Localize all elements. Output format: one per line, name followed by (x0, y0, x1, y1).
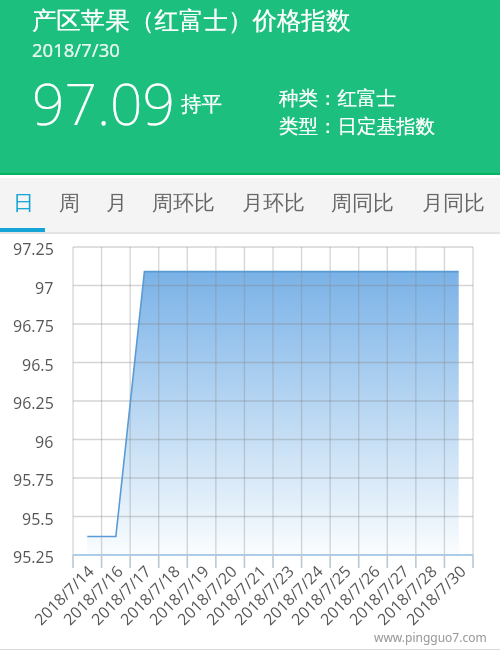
staticText: 97.25 (13, 238, 54, 260)
staticText: 产区苹果（红富士）价格指数 (32, 5, 351, 36)
staticText: 97 (35, 277, 54, 299)
button[interactable]: www.pingguo7.com (374, 629, 487, 645)
staticText: 95.75 (13, 469, 54, 491)
staticText: 月 (106, 190, 127, 216)
staticText: 周 (59, 190, 80, 216)
staticText: 2018/7/17 (86, 560, 155, 630)
staticText: 2018/7/20 (172, 560, 241, 630)
staticText: 2018/7/30 (401, 560, 470, 630)
staticText: 95.25 (13, 546, 54, 568)
button[interactable]: 月同比 (406, 178, 500, 228)
staticText: 96 (35, 431, 54, 453)
staticText: 2018/7/27 (344, 560, 413, 630)
staticText: 97.09 (32, 64, 176, 142)
button[interactable]: 日 (0, 178, 46, 228)
staticText: 2018/7/30 (32, 37, 120, 62)
staticText: 2018/7/26 (315, 560, 384, 630)
staticText: www.pingguo7.com (374, 629, 487, 645)
button[interactable]: 月环比 (227, 178, 319, 228)
button[interactable]: 周环比 (139, 178, 227, 228)
staticText: 2018/7/28 (372, 560, 441, 630)
staticText: 日 (13, 190, 34, 216)
staticText: 周同比 (331, 190, 394, 216)
staticText: 持平 (181, 91, 222, 117)
staticText: 96.25 (13, 392, 54, 414)
staticText: 2018/7/18 (115, 560, 184, 630)
button[interactable]: 周同比 (319, 178, 406, 228)
staticText: 2018/7/23 (229, 560, 298, 630)
button[interactable]: 周 (46, 178, 93, 228)
staticText: 种类：红富士 (279, 86, 396, 111)
staticText: 月同比 (422, 190, 485, 216)
staticText: 周环比 (152, 190, 215, 216)
staticText: 2018/7/24 (258, 560, 327, 630)
staticText: 2018/7/14 (29, 560, 98, 630)
staticText: 类型：日定基指数 (279, 114, 435, 139)
staticText: 96.75 (13, 315, 54, 337)
staticText: 2018/7/16 (58, 560, 127, 630)
staticText: 96.5 (22, 354, 54, 376)
staticText: 95.5 (22, 508, 54, 530)
button[interactable]: 月 (93, 178, 139, 228)
staticText: 2018/7/19 (144, 560, 213, 630)
staticText: 月环比 (242, 190, 305, 216)
staticText: 2018/7/25 (286, 560, 355, 630)
staticText: 2018/7/21 (201, 560, 270, 630)
